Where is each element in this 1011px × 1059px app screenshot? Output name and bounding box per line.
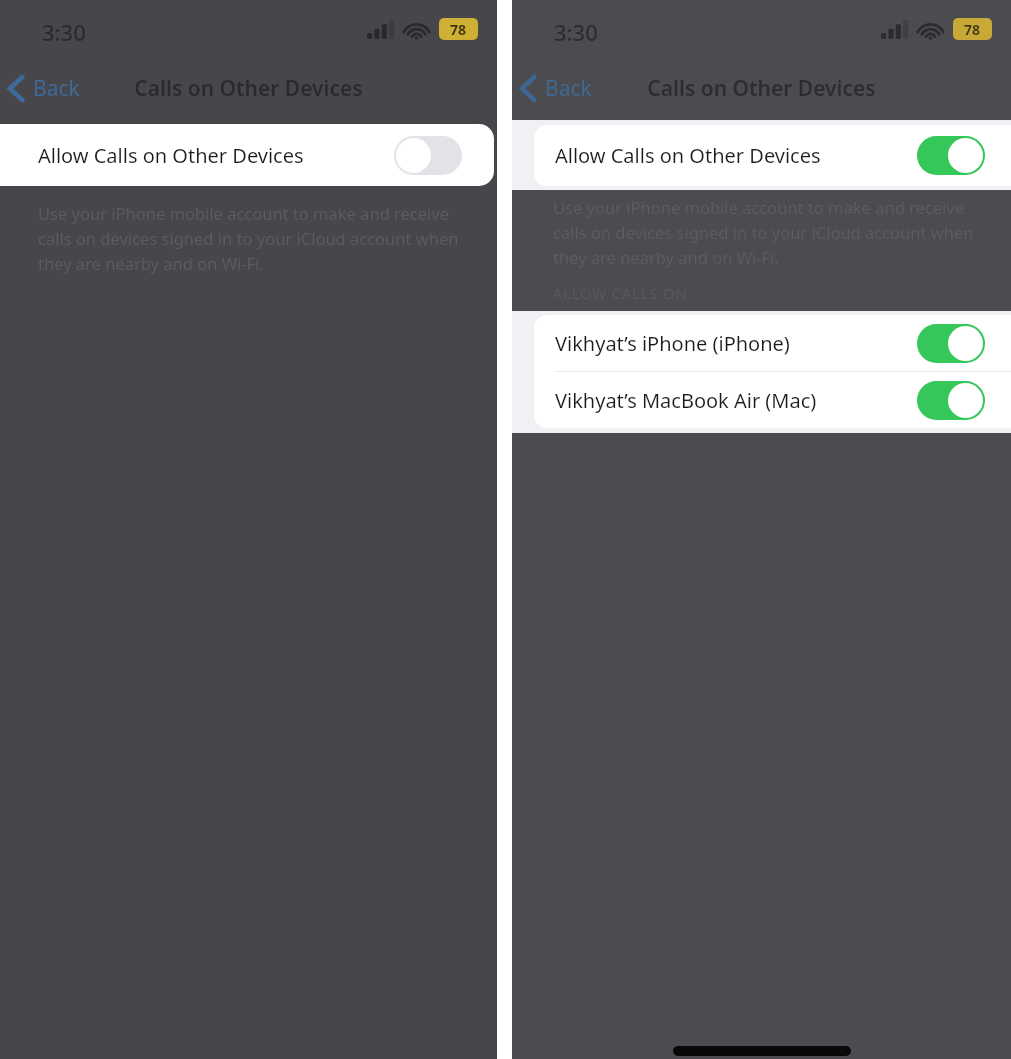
button[interactable]: Switch on <box>917 136 985 175</box>
button[interactable]: Allow Calls on Other Devices <box>534 125 1011 186</box>
button[interactable]: Back <box>514 66 602 110</box>
button[interactable]: Switch on <box>917 324 985 363</box>
staticText: Back <box>545 74 592 103</box>
staticText: Allow Calls on Other Devices <box>555 142 821 169</box>
staticText: Vikhyat’s iPhone (iPhone) <box>555 330 790 357</box>
button[interactable]: Vikhyat’s MacBook Air (Mac) <box>534 372 1011 428</box>
staticText: 3:30 <box>554 17 598 47</box>
staticText: Calls on Other Devices <box>134 74 363 103</box>
button[interactable]: Switch on <box>917 381 985 420</box>
staticText: 3:30 <box>42 17 86 47</box>
staticText: Calls on Other Devices <box>647 74 876 103</box>
button[interactable]: Allow Calls on Other Devices <box>0 124 494 186</box>
staticText: 78 <box>450 20 467 39</box>
staticText: Back <box>33 74 80 103</box>
staticText: Use your iPhone mobile account to make a… <box>38 202 468 274</box>
staticText: Allow Calls on Other Devices <box>38 142 304 169</box>
button[interactable]: Switch off <box>394 136 462 175</box>
staticText: Use your iPhone mobile account to make a… <box>553 196 985 268</box>
staticText: 78 <box>964 20 981 39</box>
button[interactable]: Vikhyat’s iPhone (iPhone) <box>534 315 1011 371</box>
staticText: Vikhyat’s MacBook Air (Mac) <box>555 387 817 414</box>
button[interactable]: Back <box>2 66 90 110</box>
staticText: ALLOW CALLS ON <box>553 283 688 303</box>
